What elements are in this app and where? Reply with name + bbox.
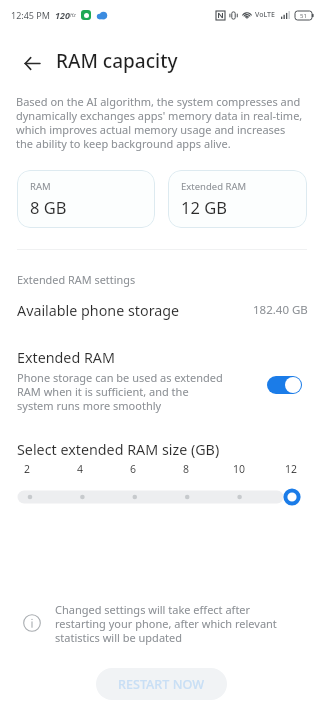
staticText: 8 <box>183 462 190 476</box>
staticText: Extended RAM <box>181 180 247 193</box>
staticText: 182.40 GB <box>253 302 308 318</box>
button[interactable]: Extended RAM <box>0 348 324 413</box>
staticText: 12 <box>285 462 298 476</box>
staticText: Based on the AI algorithm, the system co… <box>16 94 303 151</box>
button[interactable]: Extended RAM <box>168 170 307 228</box>
button[interactable]: RESTART NOW <box>96 668 227 700</box>
staticText: Phone storage can be used as extended RA… <box>17 370 223 413</box>
staticText: 6 <box>130 462 137 476</box>
staticText: RAM <box>30 180 51 193</box>
staticText: 12:45 PM <box>11 9 50 21</box>
button[interactable]: Available phone storage <box>0 296 324 324</box>
staticText: 2 <box>24 462 31 476</box>
button[interactable] <box>267 376 302 394</box>
staticText: Extended RAM <box>17 348 115 367</box>
staticText: Hz <box>70 12 76 19</box>
staticText: 10 <box>233 462 246 476</box>
staticText: 8 GB <box>30 196 67 218</box>
staticText: 4 <box>77 462 84 476</box>
button[interactable]: Back <box>14 45 50 81</box>
staticText: 120 <box>55 9 70 21</box>
staticText: Changed settings will take effect after … <box>55 602 277 645</box>
staticText: Extended RAM settings <box>17 272 136 287</box>
button[interactable]: RAM <box>17 170 155 228</box>
staticText: Select extended RAM size (GB) <box>17 440 220 459</box>
staticText: RESTART NOW <box>118 676 205 693</box>
staticText: 51 <box>300 12 307 20</box>
staticText: Available phone storage <box>17 301 180 320</box>
staticText: RAM capacity <box>56 48 178 74</box>
button[interactable] <box>0 485 324 509</box>
staticText: 12 GB <box>181 196 227 218</box>
staticText: VoLTE <box>255 10 275 20</box>
